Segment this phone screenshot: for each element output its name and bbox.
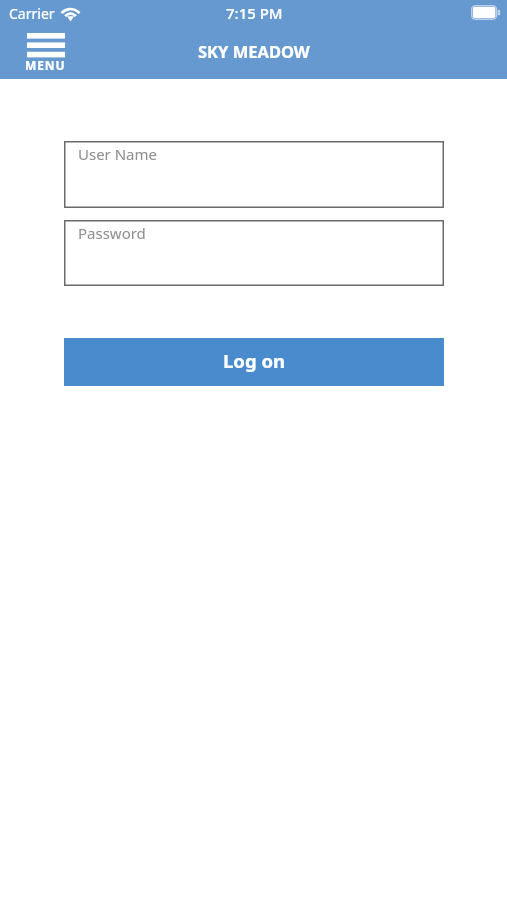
staticText: MENU [25, 57, 66, 73]
staticText: Password [78, 223, 146, 243]
staticText: SKY MEADOW [198, 40, 310, 62]
button[interactable]: Password [64, 220, 444, 286]
button[interactable]: User Name [64, 141, 444, 208]
staticText: Log on [223, 348, 285, 373]
button[interactable]: Log on [64, 338, 444, 386]
staticText: 7:15 PM [226, 3, 283, 23]
staticText: User Name [78, 144, 158, 164]
staticText: Carrier [9, 4, 55, 23]
button[interactable]: Menu [25, 33, 66, 73]
